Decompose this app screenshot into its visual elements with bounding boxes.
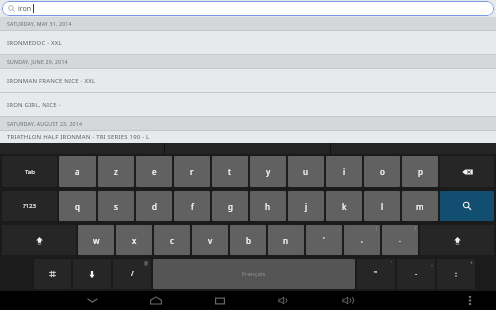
button[interactable]: SATURDAY, MAY 31, 2014 — [0, 17, 496, 30]
button[interactable]: w — [78, 225, 114, 255]
staticText: t — [228, 166, 232, 177]
button[interactable]: Shift — [420, 225, 494, 255]
button[interactable]: h — [250, 191, 286, 221]
staticText: x — [132, 235, 137, 246]
staticText: Français — [242, 270, 266, 278]
staticText: b — [246, 235, 251, 246]
button[interactable]: ' — [357, 259, 395, 289]
staticText: g — [228, 201, 233, 212]
button[interactable]: t — [212, 156, 248, 187]
staticText: q — [75, 201, 80, 212]
staticText: : — [338, 226, 340, 232]
staticText: v — [208, 235, 213, 246]
button[interactable]: : — [306, 225, 342, 255]
staticText: IRONMEDOC - XXL — [7, 39, 62, 47]
staticText: i — [343, 166, 346, 177]
staticText: c — [170, 235, 174, 246]
staticText: ! — [376, 226, 378, 232]
staticText: ?123 — [23, 202, 36, 210]
staticText: p — [418, 166, 423, 177]
staticText: a — [75, 166, 80, 177]
button[interactable]: Recents — [207, 291, 233, 310]
staticText: IRON GIRL, NICE - — [7, 101, 61, 109]
staticText: ? — [414, 226, 416, 232]
button[interactable]: r — [174, 156, 210, 187]
button[interactable]: ?123 — [2, 191, 57, 221]
staticText: e — [152, 166, 157, 177]
button[interactable]: iron — [2, 1, 494, 16]
staticText: Tab — [25, 168, 35, 176]
staticText: r — [190, 166, 194, 177]
button[interactable]: Colon — [437, 259, 475, 289]
button[interactable]: Hide keyboard — [79, 291, 105, 310]
staticText: SATURDAY, AUGUST 23, 2014 — [7, 120, 83, 127]
staticText: - — [415, 269, 418, 279]
staticText: ' — [391, 260, 393, 266]
button[interactable]: Backspace — [440, 156, 494, 187]
staticText: w — [93, 235, 100, 246]
staticText: @ — [144, 260, 149, 266]
button[interactable]: Volume down — [271, 291, 297, 310]
button[interactable]: f — [174, 191, 210, 221]
button[interactable]: TRIATHLON HALF IRONMAN - TRI SERIES 190 … — [0, 131, 496, 143]
button[interactable]: n — [268, 225, 304, 255]
button[interactable]: g — [212, 191, 248, 221]
button[interactable]: e — [136, 156, 172, 187]
button[interactable]: SATURDAY, AUGUST 23, 2014 — [0, 117, 496, 130]
button[interactable]: More options — [457, 291, 483, 310]
button[interactable]: IRONMEDOC - XXL — [0, 31, 496, 54]
button[interactable]: o — [364, 156, 400, 187]
button[interactable]: b — [230, 225, 266, 255]
button[interactable]: m — [402, 191, 438, 221]
button[interactable]: i — [326, 156, 362, 187]
staticText: n — [283, 235, 289, 246]
button[interactable]: a — [59, 156, 96, 187]
staticText: f — [191, 201, 194, 212]
staticText: SATURDAY, MAY 31, 2014 — [7, 20, 72, 27]
staticText: . — [399, 235, 401, 245]
button[interactable]: ? — [382, 225, 418, 255]
staticText: d — [152, 201, 157, 212]
button[interactable]: Home — [143, 291, 169, 310]
button[interactable]: d — [136, 191, 172, 221]
button[interactable]: Shift — [2, 225, 76, 255]
button[interactable]: Search — [440, 191, 494, 221]
staticText: / — [131, 269, 134, 279]
button[interactable]: u — [288, 156, 324, 187]
button[interactable]: l — [364, 191, 400, 221]
button[interactable]: v — [192, 225, 228, 255]
button[interactable]: Tab — [2, 156, 57, 187]
staticText: , — [361, 235, 363, 245]
button[interactable]: Voice input — [73, 259, 111, 289]
button[interactable]: p — [402, 156, 438, 187]
staticText: ' — [323, 235, 325, 245]
button[interactable]: s — [98, 191, 134, 221]
button[interactable]: IRONMAN FRANCE NICE - XXL — [0, 69, 496, 92]
button[interactable]: IRON GIRL, NICE - — [0, 93, 496, 116]
button[interactable]: q — [59, 191, 96, 221]
staticText: u — [303, 166, 309, 177]
staticText: y — [266, 166, 271, 177]
button[interactable]: k — [326, 191, 362, 221]
button[interactable]: ! — [344, 225, 380, 255]
staticText: s — [114, 201, 118, 212]
staticText: h — [265, 201, 271, 212]
staticText: o — [380, 166, 385, 177]
button[interactable]: Control — [34, 259, 71, 289]
button[interactable]: x — [116, 225, 152, 255]
button[interactable]: y — [250, 156, 286, 187]
staticText: m — [416, 201, 424, 212]
button[interactable]: Volume up — [335, 291, 361, 310]
button[interactable]: c — [154, 225, 190, 255]
staticText: z — [114, 166, 118, 177]
button[interactable]: SUNDAY, JUNE 29, 2014 — [0, 55, 496, 68]
button[interactable]: _ — [397, 259, 435, 289]
button[interactable]: z — [98, 156, 134, 187]
staticText: + — [470, 260, 473, 266]
button[interactable]: j — [288, 191, 324, 221]
button[interactable]: @ — [113, 259, 151, 289]
